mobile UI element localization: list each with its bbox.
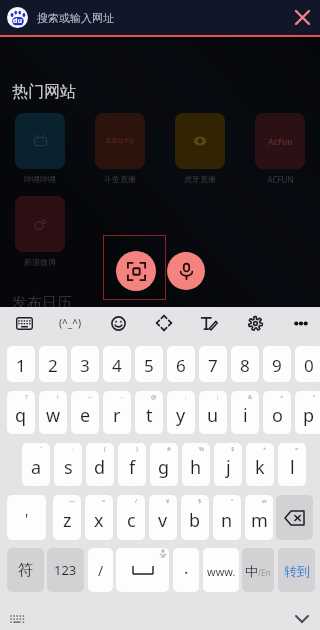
staticText: ACFUN: [267, 174, 294, 185]
staticText: ^: [280, 393, 284, 401]
button[interactable]: Handwriting: [193, 307, 225, 339]
button[interactable]: j: [214, 443, 242, 486]
button[interactable]: 7: [199, 346, 227, 382]
button[interactable]: Keyboard: [8, 307, 40, 339]
button[interactable]: d: [86, 443, 114, 486]
button[interactable]: h: [182, 443, 210, 486]
button[interactable]: Switch keyboard: [3, 605, 31, 630]
button[interactable]: e: [71, 391, 99, 434]
button[interactable]: z: [53, 495, 81, 540]
button[interactable]: 8: [231, 346, 259, 382]
button[interactable]: p: [295, 391, 320, 434]
staticText: /: [135, 497, 138, 505]
staticText: .: [184, 557, 189, 579]
button[interactable]: 虎牙直播: [175, 113, 225, 169]
button[interactable]: www.: [203, 548, 239, 592]
button[interactable]: x: [85, 495, 113, 540]
button[interactable]: 符: [7, 548, 44, 592]
button[interactable]: Space: [116, 548, 169, 592]
staticText: 新浪微博: [24, 257, 56, 267]
button[interactable]: w: [39, 391, 67, 434]
staticText: 3: [80, 354, 90, 377]
button[interactable]: a: [22, 443, 50, 486]
staticText: x: [94, 508, 104, 533]
button[interactable]: s: [54, 443, 82, 486]
button[interactable]: 斗鱼直播: [95, 113, 145, 169]
button[interactable]: /: [88, 548, 113, 592]
staticText: j: [226, 455, 231, 480]
button[interactable]: g: [150, 443, 178, 486]
button[interactable]: Hide keyboard: [288, 605, 316, 630]
staticText: w: [262, 497, 267, 505]
button[interactable]: q: [7, 391, 35, 434]
staticText: +: [263, 445, 267, 453]
staticText: /: [98, 561, 104, 580]
button[interactable]: ': [7, 495, 46, 540]
button[interactable]: Resize: [148, 307, 180, 339]
button[interactable]: .: [173, 548, 199, 592]
button[interactable]: y: [167, 391, 195, 434]
button[interactable]: 中: [242, 548, 274, 592]
button[interactable]: 4: [103, 346, 131, 382]
staticText: f: [129, 455, 136, 480]
button[interactable]: Backspace: [276, 495, 313, 540]
button[interactable]: 3: [71, 346, 99, 382]
staticText: www.: [207, 564, 236, 579]
staticText: m: [251, 508, 268, 533]
button[interactable]: r: [103, 391, 131, 434]
button[interactable]: Emoji: [102, 307, 134, 339]
button[interactable]: 6: [167, 346, 195, 382]
button[interactable]: 5: [135, 346, 163, 382]
button[interactable]: f: [118, 443, 146, 486]
staticText: /En: [258, 567, 271, 578]
staticText: h: [190, 455, 202, 480]
button[interactable]: v: [149, 495, 177, 540]
staticText: d: [94, 455, 106, 480]
button[interactable]: u: [199, 391, 227, 434]
staticText: 中: [245, 563, 258, 579]
button[interactable]: o: [263, 391, 291, 434]
staticText: 热门网站: [12, 82, 76, 102]
staticText: 2: [48, 354, 58, 377]
button[interactable]: 123: [47, 548, 84, 592]
button[interactable]: m: [245, 495, 273, 540]
button[interactable]: 1: [7, 346, 35, 382]
staticText: ;: [217, 393, 219, 401]
staticText: 1: [16, 354, 26, 377]
staticText: a: [31, 455, 42, 480]
button[interactable]: l: [278, 443, 306, 486]
staticText: b: [189, 508, 201, 533]
staticText: g: [158, 455, 170, 480]
staticText: :: [185, 393, 187, 401]
button[interactable]: 哔哩哔哩: [15, 113, 65, 169]
button[interactable]: 2: [39, 346, 67, 382]
staticText: AcFun: [268, 136, 293, 147]
button[interactable]: t: [135, 391, 163, 434]
button[interactable]: c: [117, 495, 145, 540]
button[interactable]: b: [181, 495, 209, 540]
button[interactable]: 0: [295, 346, 320, 382]
staticText: w: [46, 403, 61, 428]
staticText: e: [80, 403, 91, 428]
button[interactable]: 9: [263, 346, 291, 382]
staticText: 4: [112, 354, 122, 377]
button[interactable]: Scan QR code: [116, 251, 156, 291]
button[interactable]: n: [213, 495, 241, 540]
staticText: `: [40, 445, 42, 453]
staticText: 9: [272, 354, 282, 377]
staticText: v: [158, 508, 168, 533]
button[interactable]: Close: [285, 0, 320, 35]
button[interactable]: ACFUN: [255, 113, 305, 169]
staticText: -: [121, 393, 123, 401]
button[interactable]: Settings: [239, 307, 271, 339]
button[interactable]: More: [285, 307, 317, 339]
button[interactable]: i: [231, 391, 259, 434]
button[interactable]: Voice search: [167, 252, 205, 290]
staticText: 虎牙直播: [184, 174, 216, 184]
button[interactable]: k: [246, 443, 274, 486]
button[interactable]: 新浪微博: [15, 196, 65, 252]
button[interactable]: Kaomoji: [54, 307, 86, 339]
staticText: ": [313, 393, 316, 401]
button[interactable]: Baidu: [7, 7, 28, 28]
button[interactable]: 转到: [278, 548, 315, 592]
